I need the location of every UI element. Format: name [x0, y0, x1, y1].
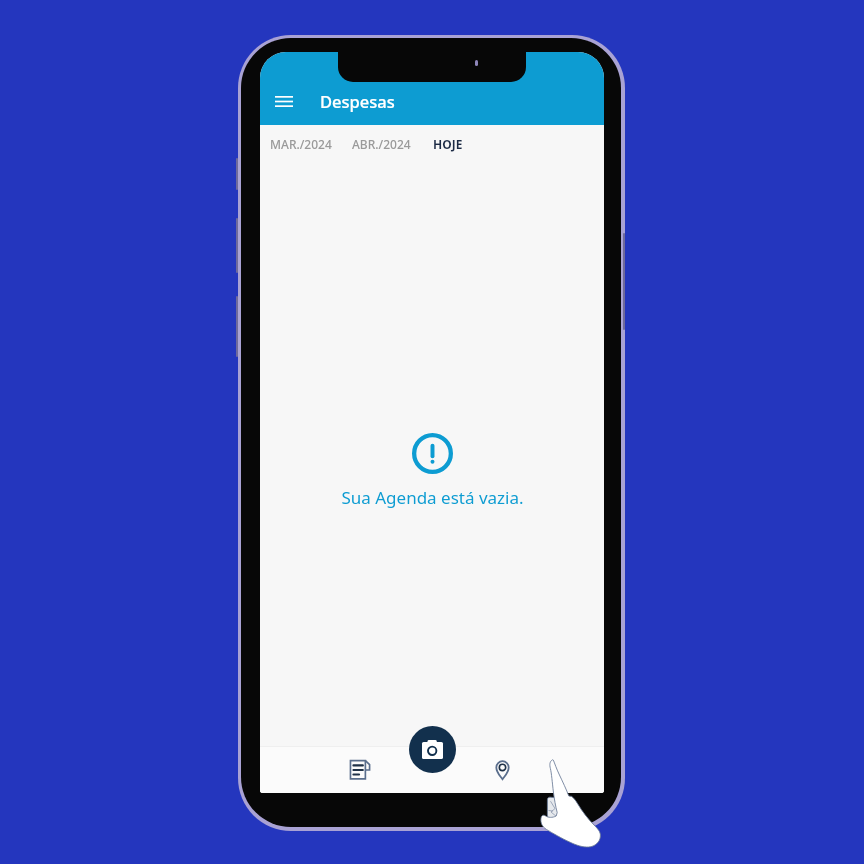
button[interactable]: Take photo of receipt	[409, 726, 456, 773]
staticText: ABR./2024	[352, 136, 411, 152]
button[interactable]: Expenses list	[340, 750, 378, 788]
button[interactable]: ABR./2024	[349, 129, 414, 159]
button[interactable]: Places	[483, 750, 521, 788]
button[interactable]: Open navigation menu	[266, 83, 302, 119]
staticText: Despesas	[320, 90, 395, 112]
staticText: HOJE	[433, 136, 463, 152]
button[interactable]: MAR./2024	[267, 129, 335, 159]
staticText: MAR./2024	[270, 136, 332, 152]
staticText: Sua Agenda está vazia.	[341, 486, 524, 509]
button[interactable]: HOJE	[430, 129, 466, 159]
